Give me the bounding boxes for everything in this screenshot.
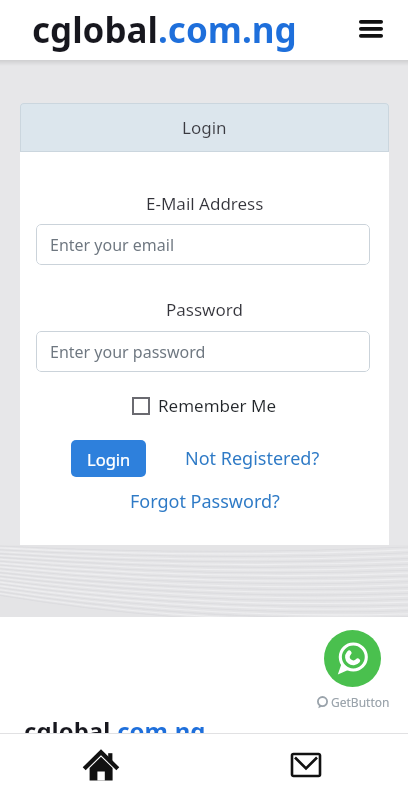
staticText: Login (87, 448, 131, 470)
staticText: Login (182, 116, 227, 139)
button[interactable] (278, 737, 334, 793)
staticText: cglobal.com.ng (32, 6, 297, 54)
button[interactable] (357, 15, 385, 43)
button[interactable]: Remember Me (132, 394, 277, 417)
button[interactable]: Not Registered? (170, 440, 335, 477)
staticText: GetButton (331, 694, 390, 710)
staticText: E-Mail Address (146, 192, 264, 215)
staticText: Forgot Password? (130, 489, 280, 514)
button[interactable] (324, 630, 381, 687)
staticText: cglobal.com.ng (24, 714, 206, 747)
button[interactable]: GetButton (316, 694, 390, 710)
button[interactable] (73, 737, 129, 793)
staticText: Enter your password (50, 341, 206, 363)
staticText: Password (166, 298, 243, 321)
button[interactable]: Login (71, 440, 146, 477)
staticText: Enter your email (50, 234, 175, 256)
button[interactable]: Enter your email (36, 224, 370, 265)
button[interactable]: Forgot Password? (120, 487, 290, 515)
staticText: Remember Me (158, 394, 277, 417)
staticText: Not Registered? (185, 446, 320, 471)
button[interactable]: Enter your password (36, 331, 370, 372)
